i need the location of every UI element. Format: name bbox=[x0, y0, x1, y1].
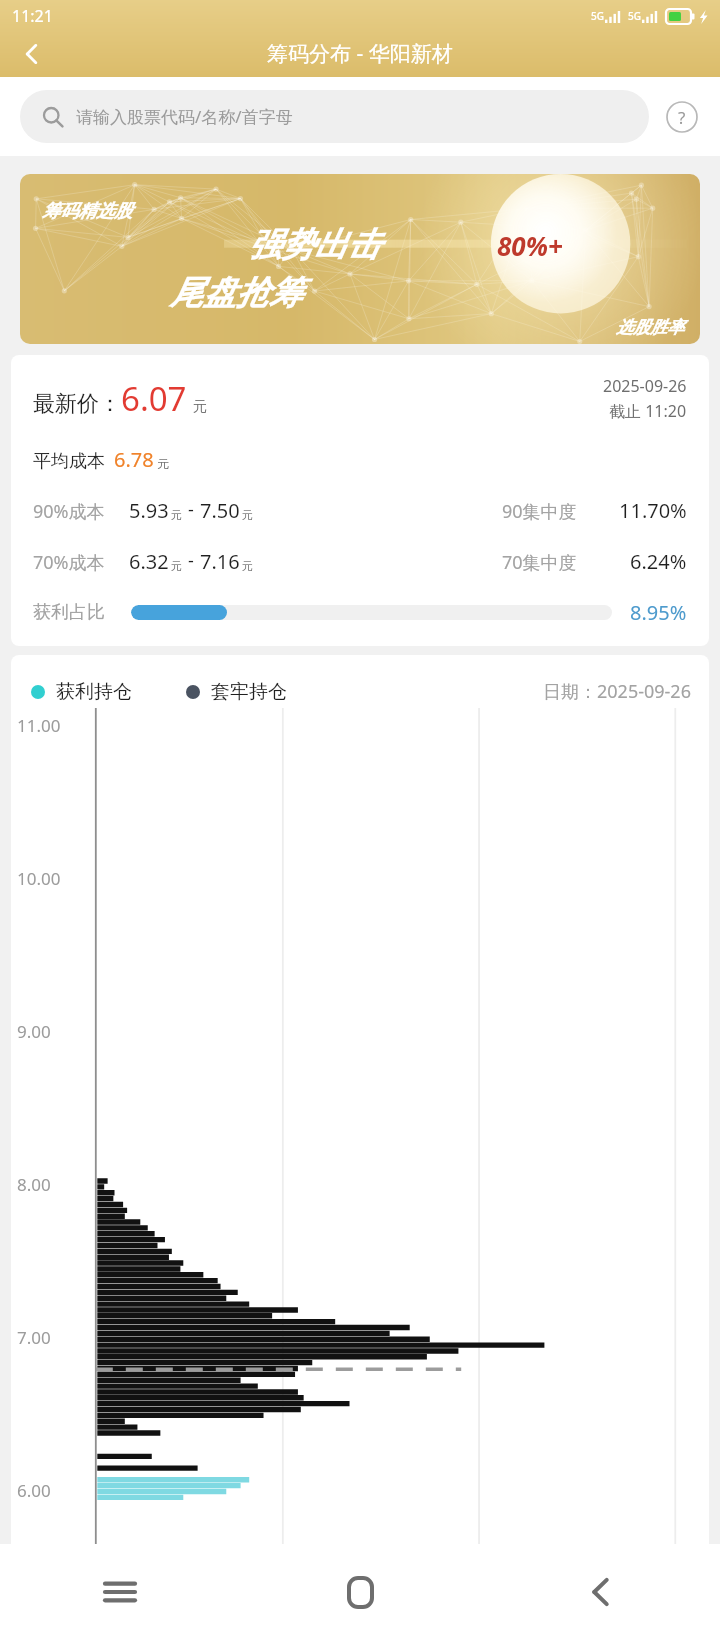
staticText: 90集中度 bbox=[502, 499, 577, 524]
staticText: 获利占比 bbox=[33, 601, 105, 624]
staticText: 套牢持仓 bbox=[211, 680, 287, 704]
button[interactable]: Recents bbox=[0, 1544, 240, 1640]
staticText: 70%成本 bbox=[33, 550, 105, 575]
staticText: 筹码精选股 bbox=[42, 200, 132, 223]
button[interactable]: 最新价： bbox=[11, 355, 709, 646]
staticText: 截止 11:20 bbox=[609, 400, 687, 422]
staticText: 8.95% bbox=[630, 599, 687, 626]
staticText: 元 bbox=[157, 456, 169, 471]
staticText: 获利持仓 bbox=[56, 680, 132, 704]
staticText: ? bbox=[678, 106, 686, 129]
staticText: 元 bbox=[171, 559, 182, 573]
staticText: 10.00 bbox=[17, 867, 61, 890]
staticText: 80%+ bbox=[497, 228, 563, 263]
staticText: 元 bbox=[242, 559, 253, 573]
staticText: 5G bbox=[591, 9, 604, 23]
staticText: 7.00 bbox=[17, 1326, 51, 1349]
staticText: 选股胜率 bbox=[616, 317, 684, 338]
staticText: 70集中度 bbox=[502, 550, 577, 575]
staticText: 6.32 bbox=[129, 548, 169, 575]
staticText: 6.24% bbox=[630, 548, 687, 575]
staticText: 9.00 bbox=[17, 1020, 51, 1043]
staticText: 元 bbox=[193, 398, 207, 416]
button[interactable]: Home bbox=[240, 1544, 480, 1640]
staticText: 筹码分布 - 华阳新材 bbox=[267, 39, 453, 68]
button[interactable]: 获利持仓 bbox=[11, 655, 709, 1544]
staticText: 6.00 bbox=[17, 1479, 51, 1502]
staticText: 7.50 bbox=[200, 497, 240, 524]
staticText: 元 bbox=[242, 508, 253, 522]
staticText: 5.93 bbox=[129, 497, 169, 524]
button[interactable]: Back bbox=[0, 30, 64, 77]
staticText: 5G bbox=[628, 9, 641, 23]
staticText: 6.07 bbox=[121, 376, 187, 421]
staticText: 日期：2025-09-26 bbox=[543, 679, 691, 704]
button[interactable]: 请输入股票代码/名称/首字母 bbox=[20, 90, 649, 143]
staticText: 强势出击 bbox=[248, 224, 380, 266]
staticText: 2025-09-26 bbox=[603, 375, 687, 397]
staticText: 最新价： bbox=[33, 390, 121, 418]
staticText: 6.78 bbox=[114, 446, 154, 473]
staticText: - bbox=[188, 548, 194, 573]
staticText: 7.16 bbox=[200, 548, 240, 575]
button[interactable]: 筹码精选股 bbox=[20, 174, 700, 344]
staticText: 平均成本 bbox=[33, 450, 105, 473]
staticText: 请输入股票代码/名称/首字母 bbox=[76, 105, 293, 128]
button[interactable]: Help bbox=[661, 96, 703, 138]
staticText: 90%成本 bbox=[33, 499, 105, 524]
staticText: 尾盘抢筹 bbox=[170, 272, 302, 314]
staticText: 11:21 bbox=[12, 5, 53, 27]
staticText: 元 bbox=[171, 508, 182, 522]
staticText: 11.70% bbox=[619, 497, 687, 524]
button[interactable]: Back bbox=[480, 1544, 720, 1640]
staticText: 8.00 bbox=[17, 1173, 51, 1196]
staticText: 11.00 bbox=[17, 714, 61, 737]
staticText: - bbox=[188, 497, 194, 522]
